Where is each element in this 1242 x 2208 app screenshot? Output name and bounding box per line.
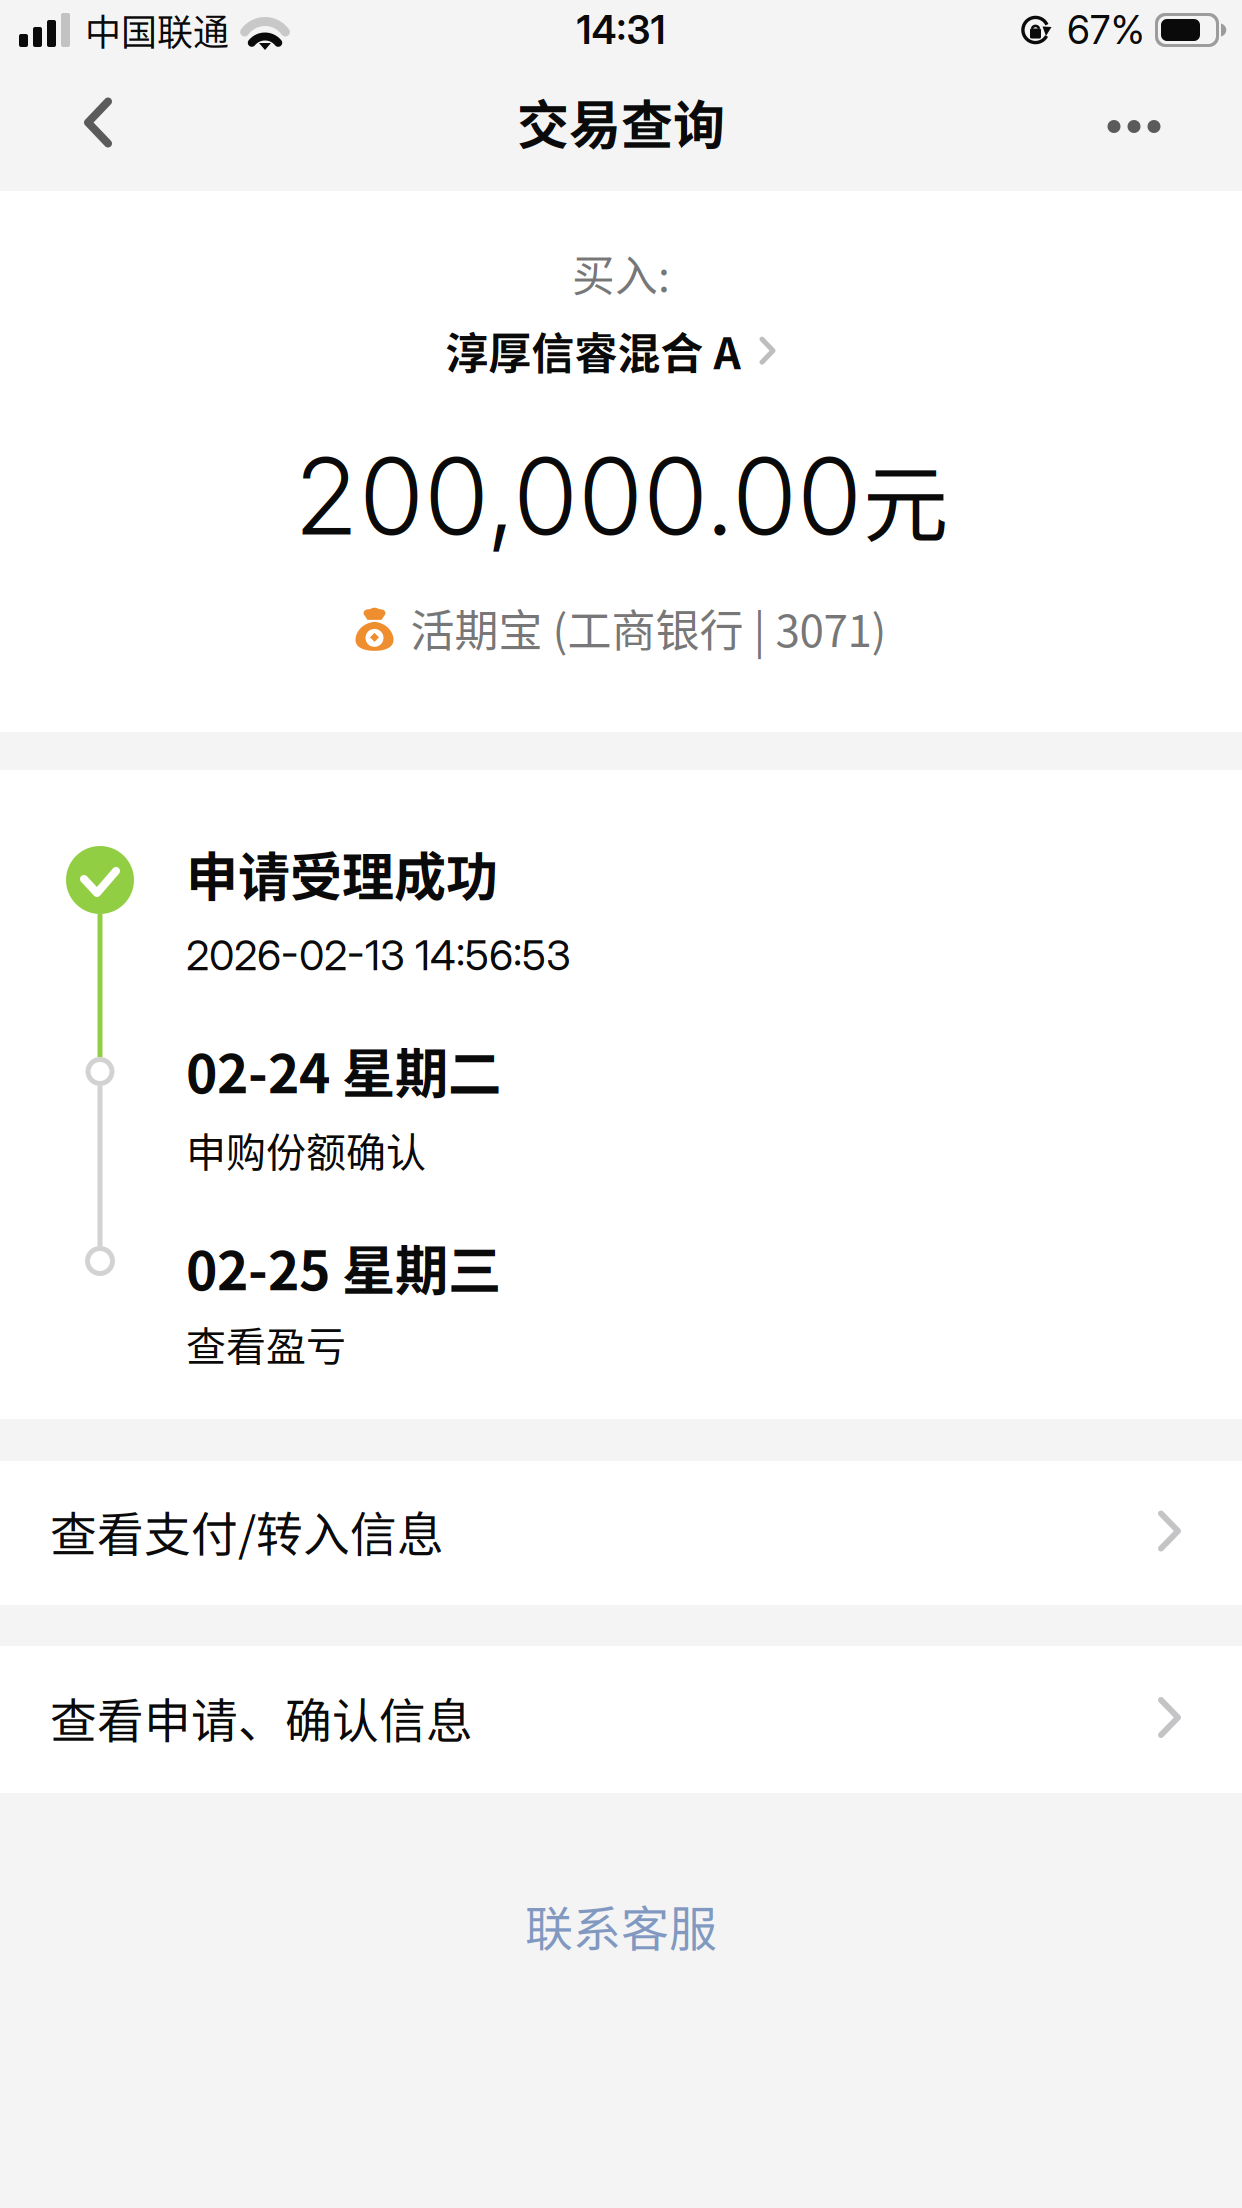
staticText: 67%: [1067, 7, 1145, 53]
button[interactable]: 查看支付/转入信息: [0, 1461, 1242, 1605]
button[interactable]: 联系客服: [0, 1793, 1242, 1960]
staticText: 活期宝 (工商银行 | 3071): [410, 596, 886, 660]
staticText: 200,000.00: [294, 433, 862, 560]
staticText: 02-24 星期二: [186, 1031, 501, 1108]
button[interactable]: 更多: [1069, 67, 1199, 177]
staticText: 02-25 星期三: [186, 1228, 501, 1306]
staticText: 查看盈亏: [186, 1315, 346, 1373]
staticText: 联系客服: [525, 1890, 717, 1960]
staticText: 申请受理成功: [186, 836, 498, 911]
staticText: 查看支付/转入信息: [50, 1497, 444, 1565]
button[interactable]: 淳厚信睿混合 A: [445, 304, 796, 382]
button[interactable]: 返回: [43, 67, 153, 177]
staticText: 买入:: [572, 242, 670, 304]
staticText: 元: [863, 436, 948, 560]
staticText: 14:31: [576, 7, 665, 53]
staticText: 申购份额确认: [186, 1120, 426, 1178]
button[interactable]: 查看申请、确认信息: [0, 1646, 1242, 1793]
staticText: 2026-02-13 14:56:53: [186, 930, 571, 980]
staticText: 中国联通: [85, 4, 229, 56]
staticText: 淳厚信睿混合 A: [445, 320, 740, 382]
staticText: 交易查询: [517, 84, 725, 159]
staticText: 查看申请、确认信息: [50, 1684, 473, 1751]
